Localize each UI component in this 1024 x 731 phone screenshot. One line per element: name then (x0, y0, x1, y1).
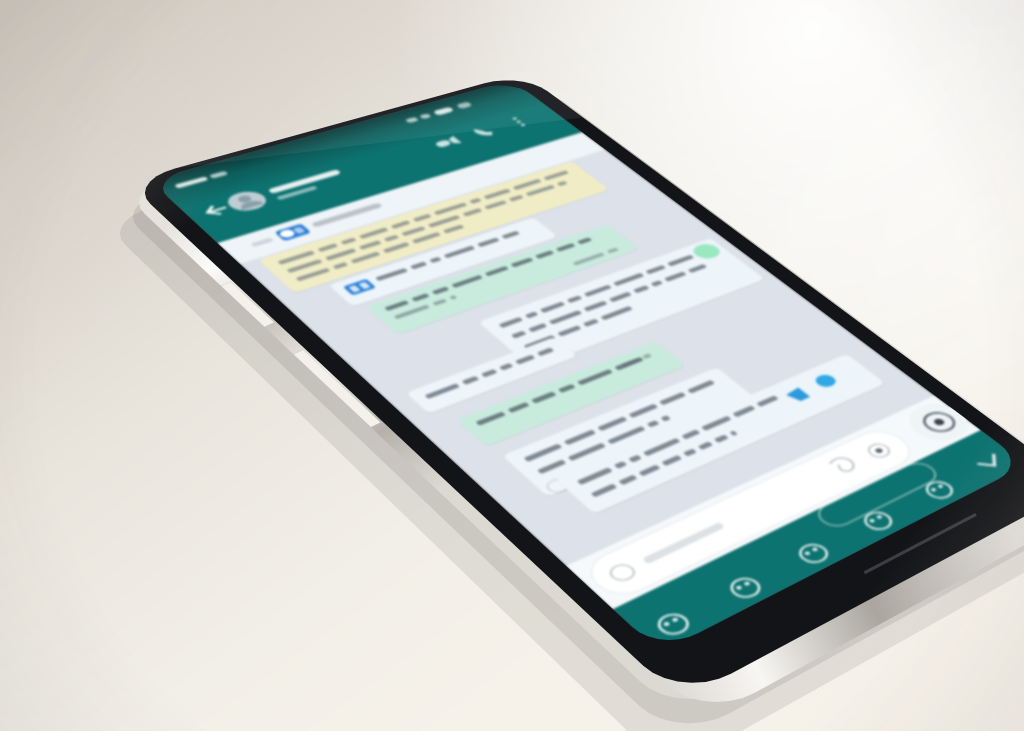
button[interactable]: Back (181, 196, 241, 227)
button[interactable]: GIF (702, 554, 778, 604)
button[interactable]: More options (493, 109, 544, 134)
button[interactable]: Camera (822, 423, 892, 467)
button[interactable]: Voice call (458, 119, 510, 145)
button[interactable]: Message input (567, 452, 828, 588)
button[interactable]: Location (837, 490, 909, 536)
button[interactable]: Video call (418, 130, 473, 157)
button[interactable]: Record voice message (874, 392, 958, 443)
button[interactable]: Stickers (772, 521, 846, 569)
button[interactable]: Emoji (629, 589, 708, 642)
button[interactable]: Attach file (790, 437, 861, 482)
button[interactable]: Open contact info (219, 146, 415, 216)
button[interactable]: Contact (899, 460, 969, 504)
